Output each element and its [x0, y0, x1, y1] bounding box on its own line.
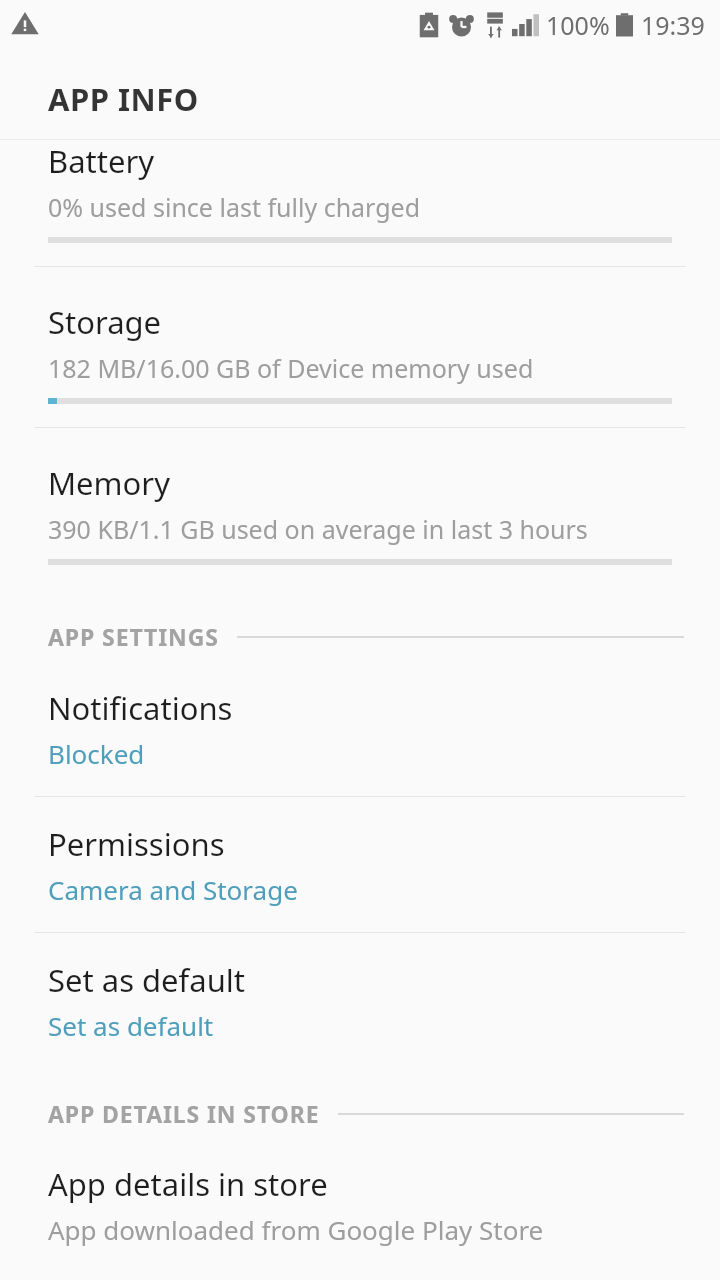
button[interactable]: Permissions [0, 797, 720, 932]
button[interactable]: Memory [0, 428, 720, 588]
staticText: APP SETTINGS [48, 621, 219, 652]
staticText: Notifications [48, 687, 233, 729]
staticText: Set as default [48, 1008, 214, 1043]
staticText: App details in store [48, 1163, 328, 1205]
button[interactable]: Storage [0, 267, 720, 427]
staticText: 390 KB/1.1 GB used on average in last 3 … [48, 512, 588, 546]
staticText: Permissions [48, 823, 225, 865]
staticText: 19:39 [641, 8, 705, 42]
staticText: Battery [48, 140, 155, 182]
staticText: APP INFO [48, 78, 199, 120]
staticText: Storage [48, 301, 162, 343]
button[interactable]: Battery [0, 113, 720, 266]
button[interactable]: Set as default [0, 933, 720, 1068]
staticText: Set as default [48, 959, 246, 1001]
staticText: App downloaded from Google Play Store [48, 1212, 544, 1247]
staticText: APP DETAILS IN STORE [48, 1098, 320, 1129]
staticText: 100% [546, 8, 610, 42]
button[interactable]: Notifications [0, 660, 720, 796]
staticText: 0% used since last fully charged [48, 190, 421, 224]
button[interactable]: App details in store [0, 1137, 720, 1253]
staticText: Blocked [48, 736, 145, 771]
staticText: Memory [48, 462, 170, 504]
staticText: Camera and Storage [48, 872, 298, 907]
staticText: 182 MB/16.00 GB of Device memory used [48, 351, 534, 385]
other: Warning [11, 10, 39, 36]
